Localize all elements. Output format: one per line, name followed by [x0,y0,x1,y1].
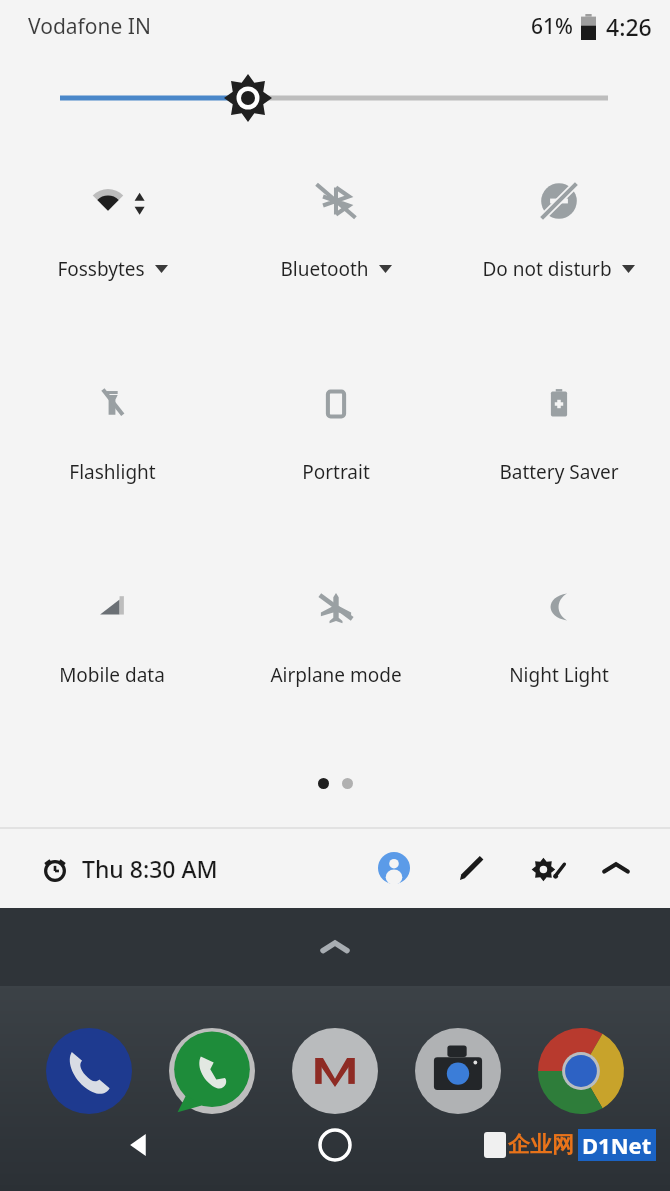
button[interactable]: Brightness [0,68,670,128]
staticText: Bluetooth [280,256,369,282]
button[interactable]: Gmail [285,1021,385,1121]
button[interactable]: Portrait [224,371,447,511]
staticText: D1Net [582,1130,652,1160]
button[interactable]: Thu 8:30 AM [42,853,218,884]
button[interactable]: Back [112,1117,168,1173]
button[interactable]: Bluetooth [224,168,447,308]
button[interactable]: Mobile data [0,574,224,714]
button[interactable]: Expand notifications [0,908,670,986]
staticText: Airplane mode [270,662,402,688]
staticText: Mobile data [59,662,165,688]
button[interactable]: Edit [448,844,496,892]
button[interactable]: Settings [522,842,574,894]
staticText: Night Light [509,662,609,688]
staticText: 企业网 [508,1131,574,1159]
staticText: 4:26 [606,11,652,42]
button[interactable]: Fossbytes [0,168,224,308]
staticText: Fossbytes [57,256,145,282]
button[interactable]: Night Light [447,574,670,714]
button[interactable]: Flashlight [0,371,224,511]
button[interactable]: Phone [39,1021,139,1121]
button[interactable]: WhatsApp [162,1021,262,1121]
staticText: Battery Saver [499,459,619,485]
button[interactable]: Camera [408,1021,508,1121]
staticText: Vodafone IN [28,12,151,41]
button[interactable]: Home [305,1115,365,1175]
button[interactable]: User [370,844,418,892]
button[interactable]: Do not disturb [447,168,670,308]
staticText: Do not disturb [482,256,612,282]
button[interactable]: Chrome [531,1021,631,1121]
staticText: 61% [531,12,573,41]
staticText: Flashlight [69,459,156,485]
button[interactable]: Airplane mode [224,574,447,714]
button[interactable]: Collapse [592,844,640,892]
staticText: Thu 8:30 AM [82,853,218,884]
staticText: Portrait [302,459,370,485]
button[interactable]: Battery Saver [447,371,670,511]
